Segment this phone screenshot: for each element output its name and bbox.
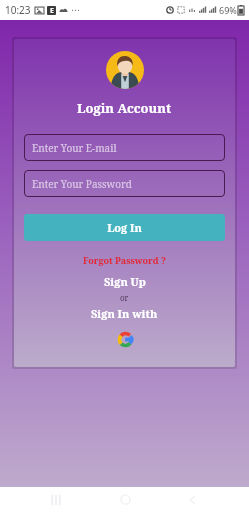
staticText: Sign In with	[91, 306, 158, 321]
staticText: ⋯	[71, 5, 80, 15]
button[interactable]: Log In	[24, 214, 225, 241]
button[interactable]: Enter Your E-mail	[24, 134, 225, 161]
staticText: Log In	[107, 220, 142, 235]
staticText: E	[50, 6, 54, 15]
staticText: Enter Your E-mail	[32, 141, 117, 155]
staticText: or	[120, 292, 129, 303]
staticText: 10:23	[5, 3, 31, 17]
button[interactable]: Forgot Password ?	[83, 254, 166, 266]
button[interactable]: Recent apps	[43, 487, 69, 512]
staticText: Enter Your Password	[32, 177, 132, 191]
staticText: Login Account	[77, 99, 172, 117]
staticText: 69%	[219, 4, 237, 16]
button[interactable]: Enter Your Password	[24, 170, 225, 197]
button[interactable]: Sign Up	[104, 274, 146, 289]
button[interactable]: Sign in with Google	[114, 328, 136, 350]
